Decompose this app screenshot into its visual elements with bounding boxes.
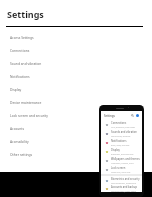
button[interactable]: Biometrics and security: [106, 176, 140, 185]
button[interactable]: Accessibility: [10, 137, 29, 144]
staticText: Other settings: [10, 152, 33, 156]
staticText: Display: [111, 148, 120, 152]
staticText: Settings: [104, 114, 115, 118]
staticText: Display: [10, 87, 22, 91]
staticText: Wallpapers and themes: [111, 157, 140, 161]
button[interactable]: Accounts: [10, 124, 25, 131]
button[interactable]: Access Settings: [10, 33, 34, 40]
staticText: Lock screen and security: [10, 113, 48, 117]
button[interactable]: Accounts and backup: [106, 185, 140, 192]
staticText: Access Settings: [10, 35, 34, 39]
staticText: Settings: [7, 8, 44, 20]
staticText: Biometrics and security: [111, 177, 140, 181]
button[interactable]: Notifications: [106, 138, 140, 147]
button[interactable]: Sounds and vibration: [106, 129, 140, 138]
staticText: Lock screen: [111, 166, 126, 170]
staticText: Device maintenance: [10, 100, 42, 104]
button[interactable]: Sound and vibration: [10, 59, 42, 66]
button[interactable]: Connections: [106, 120, 140, 129]
button[interactable]: Lock screen and security: [10, 111, 48, 118]
staticText: Connections: [111, 121, 127, 125]
button[interactable]: Other settings: [10, 150, 33, 157]
staticText: Sound mode, Ringtone: [111, 135, 131, 137]
staticText: Connections: [10, 48, 30, 52]
button[interactable]: Display: [10, 85, 22, 92]
button[interactable]: Notifications: [10, 72, 30, 79]
staticText: Sounds and vibration: [111, 130, 137, 134]
staticText: Wi-Fi, Bluetooth, Data usage: [111, 126, 135, 128]
button[interactable]: Connections: [10, 46, 30, 53]
staticText: Sound and vibration: [10, 61, 42, 65]
staticText: Block, allow, prioritize: [111, 144, 130, 146]
staticText: Accounts and backup: [111, 185, 137, 189]
staticText: Notifications: [111, 139, 127, 143]
staticText: Brightness, Blue light filter: [111, 153, 134, 155]
staticText: Accessibility: [10, 139, 29, 143]
staticText: Accounts: [10, 126, 25, 130]
staticText: Wallpapers, Themes, Icons: [111, 162, 134, 164]
staticText: Notifications: [10, 74, 30, 78]
button[interactable]: Wallpapers and themes: [106, 156, 140, 165]
button[interactable]: Search: [131, 114, 134, 117]
button[interactable]: Lock screen: [106, 165, 140, 174]
staticText: Screen lock, Clock style: [111, 171, 131, 173]
button[interactable]: Device maintenance: [10, 98, 42, 105]
staticText: Face recognition, Fingerprints: [111, 182, 137, 184]
button[interactable]: Account: [136, 114, 139, 117]
button[interactable]: Display: [106, 147, 140, 156]
staticText: Samsung Cloud, Smart Switch: [111, 190, 137, 192]
